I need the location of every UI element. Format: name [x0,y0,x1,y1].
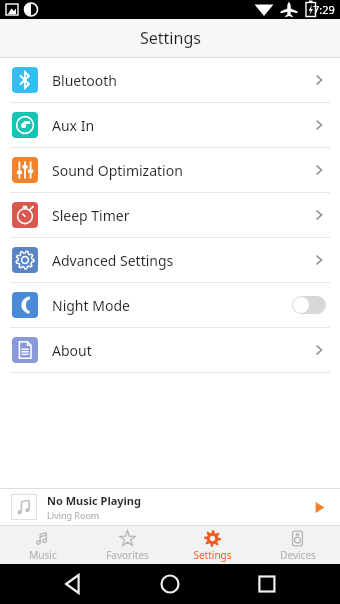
staticText: Bluetooth [52,71,312,90]
button[interactable]: Toggle Night Mode [292,296,326,314]
staticText: About [52,341,312,360]
staticText: Settings [193,548,232,562]
staticText: 7:29 [313,2,335,17]
staticText: Advanced Settings [52,251,312,270]
button[interactable]: About [0,328,340,372]
button[interactable]: Aux In [0,103,340,147]
button[interactable]: Sound Optimization [0,148,340,192]
staticText: No Music Playing [47,493,141,508]
button[interactable]: Devices [255,526,340,564]
button[interactable]: Favorites [85,526,170,564]
button[interactable]: Bluetooth [0,58,340,102]
staticText: Music [29,548,57,562]
button[interactable]: No Music Playing [0,489,340,525]
staticText: Devices [280,548,316,562]
button[interactable]: Sleep Timer [0,193,340,237]
button[interactable]: Music [0,526,85,564]
button[interactable]: Play [309,497,329,517]
button[interactable]: Advanced Settings [0,238,340,282]
staticText: Sound Optimization [52,161,312,180]
staticText: Aux In [52,116,312,135]
staticText: Favorites [106,548,149,562]
staticText: Living Room [47,509,100,521]
button[interactable]: Settings [170,526,255,564]
button[interactable]: Night Mode [0,283,340,327]
staticText: Night Mode [52,296,292,315]
staticText: Settings [140,27,201,49]
staticText: Sleep Timer [52,206,312,225]
